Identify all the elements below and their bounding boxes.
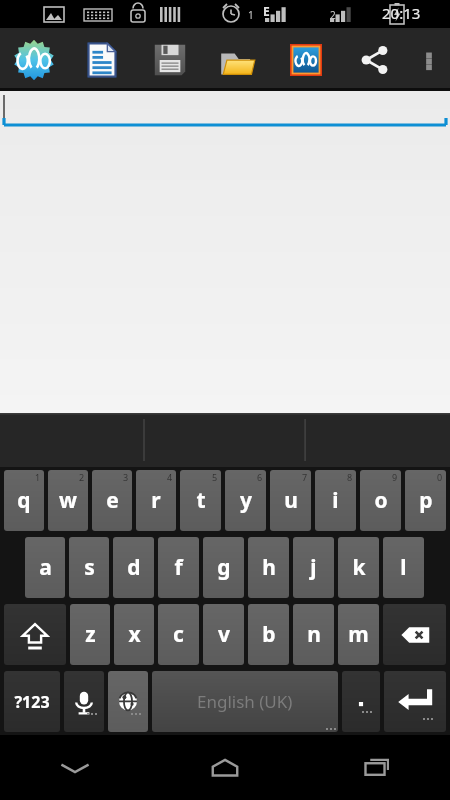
button[interactable]: Change language — [108, 671, 148, 732]
staticText: y — [240, 486, 252, 515]
button[interactable]: c — [158, 604, 199, 665]
staticText: i — [332, 486, 339, 515]
staticText: 4 — [167, 471, 173, 483]
button[interactable]: Voice input — [64, 671, 104, 732]
button[interactable]: n — [293, 604, 334, 665]
button[interactable]: Share — [340, 28, 408, 91]
button[interactable]: o — [360, 470, 401, 531]
button[interactable]: App logo — [0, 28, 68, 91]
button[interactable]: f — [158, 537, 199, 598]
staticText: n — [307, 620, 321, 649]
staticText: p — [419, 486, 433, 515]
staticText: r — [151, 486, 161, 515]
staticText: l — [400, 553, 407, 582]
button[interactable] — [0, 93, 450, 129]
staticText: a — [39, 553, 52, 582]
button[interactable]: j — [293, 537, 334, 598]
staticText: 1 — [35, 471, 41, 483]
button[interactable]: z — [70, 604, 110, 665]
button[interactable]: More options — [408, 28, 450, 91]
button[interactable]: Shift — [4, 604, 66, 665]
staticText: 2 — [330, 8, 336, 22]
button[interactable]: g — [203, 537, 244, 598]
button[interactable]: t — [180, 470, 221, 531]
staticText: f — [174, 553, 183, 582]
staticText: z — [85, 620, 96, 649]
staticText: k — [352, 553, 366, 582]
button[interactable]: Period — [342, 671, 380, 732]
staticText: c — [173, 620, 184, 649]
staticText: 0 — [437, 471, 443, 483]
button[interactable]: Save — [136, 28, 204, 91]
staticText: q — [17, 486, 31, 515]
button[interactable]: Open folder — [204, 28, 272, 91]
button[interactable]: s — [69, 537, 109, 598]
button[interactable]: i — [315, 470, 356, 531]
button[interactable]: Hide keyboard — [0, 735, 150, 800]
staticText: e — [106, 486, 119, 515]
staticText: 5 — [212, 471, 218, 483]
staticText: E — [263, 3, 270, 19]
staticText: 1 — [248, 8, 254, 22]
button[interactable]: q — [4, 470, 44, 531]
button[interactable]: m — [338, 604, 379, 665]
staticText: d — [127, 553, 141, 582]
button[interactable]: u — [270, 470, 311, 531]
staticText: h — [262, 553, 276, 582]
staticText: English (UK) — [197, 690, 293, 713]
staticText: j — [310, 553, 317, 582]
button[interactable]: Enter — [384, 671, 446, 732]
button[interactable]: l — [383, 537, 424, 598]
button[interactable]: ?123 — [4, 671, 60, 732]
button[interactable]: h — [248, 537, 289, 598]
button[interactable]: p — [405, 470, 446, 531]
staticText: ?123 — [14, 691, 50, 713]
button[interactable]: b — [248, 604, 289, 665]
button[interactable]: a — [25, 537, 65, 598]
staticText: w — [59, 486, 77, 515]
button[interactable]: Language — [272, 28, 340, 91]
staticText: 3 — [123, 471, 129, 483]
staticText: 20:13 — [382, 3, 421, 23]
button[interactable]: Recent apps — [300, 735, 450, 800]
staticText: o — [374, 486, 388, 515]
button[interactable]: d — [113, 537, 154, 598]
staticText: v — [218, 620, 230, 649]
staticText: 8 — [347, 471, 353, 483]
staticText: x — [128, 620, 141, 649]
button[interactable]: r — [136, 470, 176, 531]
staticText: 9 — [392, 471, 398, 483]
staticText: b — [262, 620, 276, 649]
staticText: 2 — [79, 471, 85, 483]
button[interactable]: v — [203, 604, 244, 665]
button[interactable]: Backspace — [383, 604, 446, 665]
staticText: s — [84, 553, 95, 582]
staticText: m — [348, 620, 369, 649]
button[interactable]: k — [338, 537, 379, 598]
staticText: u — [284, 486, 298, 515]
button[interactable]: English (UK) — [152, 671, 338, 732]
button[interactable]: y — [225, 470, 266, 531]
staticText: g — [217, 553, 231, 582]
button[interactable]: New document — [68, 28, 136, 91]
staticText: 7 — [302, 471, 308, 483]
button[interactable]: w — [48, 470, 88, 531]
button[interactable]: x — [114, 604, 154, 665]
button[interactable]: e — [92, 470, 132, 531]
button[interactable]: Home — [150, 735, 300, 800]
staticText: t — [196, 486, 206, 515]
staticText: 6 — [257, 471, 263, 483]
